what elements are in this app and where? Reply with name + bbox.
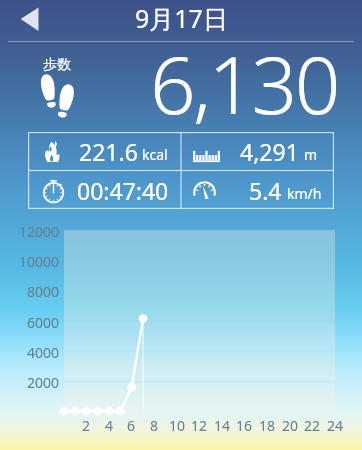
staticText: 6000 xyxy=(0,313,59,332)
staticText: kcal xyxy=(142,145,168,164)
button[interactable]: Back xyxy=(14,5,42,33)
staticText: 6 xyxy=(116,416,146,435)
staticText: 8000 xyxy=(0,282,59,301)
button[interactable]: duration stat xyxy=(28,171,181,210)
staticText: 6,130 xyxy=(150,28,338,137)
button[interactable]: speed stat xyxy=(181,171,334,210)
staticText: 10 xyxy=(162,416,192,435)
staticText: 16 xyxy=(229,416,259,435)
staticText: 5.4 xyxy=(249,175,282,206)
staticText: 2 xyxy=(71,416,101,435)
staticText: 4,291 xyxy=(240,136,299,167)
staticText: 歩数 xyxy=(43,56,71,74)
button[interactable]: kcal stat xyxy=(28,132,181,171)
staticText: 4000 xyxy=(0,343,59,362)
button[interactable]: distance stat xyxy=(181,132,334,171)
staticText: 18 xyxy=(252,416,282,435)
staticText: 24 xyxy=(320,416,350,435)
staticText: 00:47:40 xyxy=(77,175,169,206)
staticText: 4 xyxy=(94,416,124,435)
staticText: 20 xyxy=(275,416,305,435)
staticText: 12 xyxy=(184,416,214,435)
staticText: km/h xyxy=(287,184,322,203)
staticText: 22 xyxy=(297,416,327,435)
staticText: 8 xyxy=(139,416,169,435)
staticText: 221.6 xyxy=(79,136,138,167)
staticText: m xyxy=(304,145,318,164)
staticText: 2000 xyxy=(0,373,59,392)
staticText: 12000 xyxy=(0,222,59,241)
staticText: 10000 xyxy=(0,252,59,271)
staticText: 14 xyxy=(207,416,237,435)
staticText: 9月17日 xyxy=(135,1,228,35)
